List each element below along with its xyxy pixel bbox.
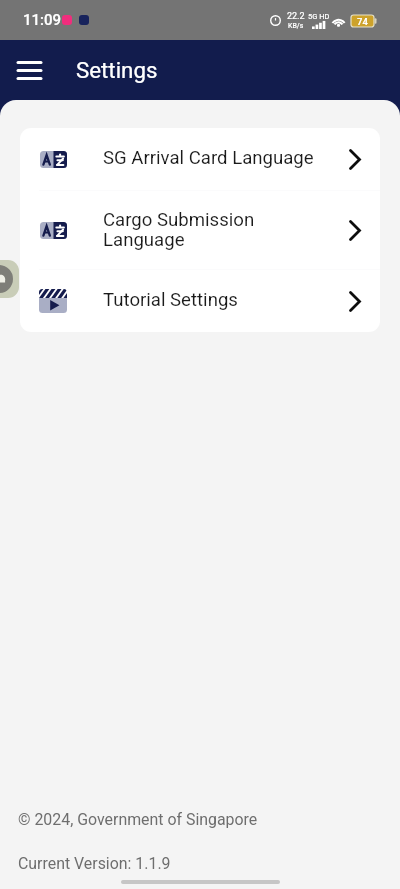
button[interactable]: SG Arrival Card Language <box>20 128 380 190</box>
button[interactable]: Menu <box>9 50 49 90</box>
button[interactable]: Tutorial Settings <box>20 270 380 332</box>
button[interactable]: Floating assistant <box>0 260 19 298</box>
staticText: © 2024, Government of Singapore <box>18 810 258 829</box>
staticText: KB/s <box>288 22 304 30</box>
staticText: 74 <box>357 16 368 27</box>
staticText: 22.2 <box>287 11 305 22</box>
staticText: SG Arrival Card Language <box>103 147 349 169</box>
button[interactable]: Cargo Submission Language <box>20 191 380 269</box>
staticText: 11:09 <box>23 11 62 29</box>
staticText: Tutorial Settings <box>103 289 349 311</box>
staticText: Settings <box>76 57 158 83</box>
staticText: Current Version: 1.1.9 <box>18 854 171 873</box>
staticText: Cargo Submission Language <box>103 209 349 250</box>
staticText: 5G HD <box>308 12 330 21</box>
